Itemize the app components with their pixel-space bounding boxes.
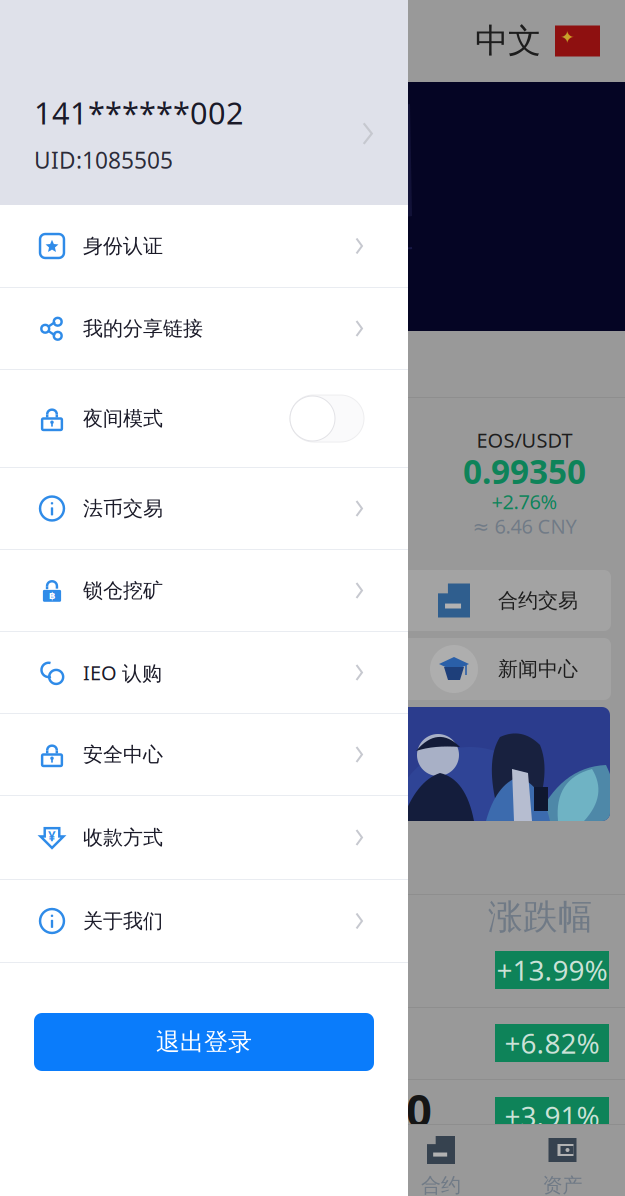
staticText: 0.99350 (463, 449, 586, 493)
staticText: 141******002 (34, 92, 244, 133)
button[interactable]: 法币交易 (0, 468, 408, 549)
staticText: 收款方式 (83, 825, 163, 850)
staticText: ✦ (560, 27, 575, 47)
staticText: 涨跌幅 (488, 896, 593, 938)
button[interactable]: 资产 (516, 1125, 625, 1196)
button[interactable]: 141******002 (0, 0, 408, 205)
staticText: +3.91% (504, 1097, 599, 1135)
staticText: 身份认证 (83, 234, 163, 258)
staticText: 锁仓挖矿 (83, 578, 163, 603)
staticText: 中文 (475, 20, 541, 61)
button[interactable]: 合约 (408, 1125, 516, 1196)
button[interactable]: 安全中心 (0, 714, 408, 795)
staticText: ฿ (49, 590, 55, 601)
staticText: 新闻中心 (498, 657, 578, 681)
staticText: EOS/USDT (476, 427, 572, 453)
button[interactable]: 身份认证 (0, 205, 408, 287)
staticText: 0 (406, 1080, 432, 1140)
staticText: 我的分享链接 (83, 316, 203, 341)
button[interactable]: ฿ (0, 550, 408, 631)
button[interactable]: 退出登录 (34, 1013, 374, 1071)
button[interactable]: 我的分享链接 (0, 288, 408, 369)
staticText: 合约交易 (498, 588, 578, 613)
staticText: ≈ 6.46 CNY (472, 513, 576, 539)
button[interactable]: 关于我们 (0, 880, 408, 962)
staticText: 法币交易 (83, 496, 163, 521)
button[interactable]: 夜间模式 (0, 370, 408, 467)
staticText: 合约 (421, 1173, 461, 1196)
staticText: UID:1085505 (34, 145, 173, 175)
staticText: 夜间模式 (83, 406, 163, 431)
staticText: +13.99% (496, 951, 607, 989)
staticText: 资产 (542, 1173, 582, 1196)
staticText: ¥ (48, 827, 56, 845)
button[interactable]: IEO 认购 (0, 632, 408, 713)
staticText: +2.76% (491, 488, 557, 515)
staticText: 安全中心 (83, 742, 163, 767)
staticText: IEO 认购 (83, 659, 162, 686)
staticText: +6.82% (504, 1024, 599, 1062)
button[interactable]: ¥ (0, 796, 408, 879)
staticText: 关于我们 (83, 909, 163, 933)
staticText: 退出登录 (156, 1027, 252, 1057)
